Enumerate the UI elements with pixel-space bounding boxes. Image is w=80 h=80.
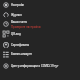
button[interactable]: QR-код (0, 29, 80, 38)
button[interactable]: Ваши счета (0, 19, 80, 29)
staticText: Центр информации о COVID-19 тут (11, 64, 59, 68)
staticText: Журнал (11, 13, 22, 17)
staticText: Проверьте настройки (11, 25, 41, 29)
staticText: Бизнес-аккаунт (11, 52, 32, 56)
staticText: Настройк (11, 3, 24, 7)
button[interactable]: Сертификаты (0, 40, 80, 49)
button[interactable]: Настройк (0, 0, 80, 9)
staticText: Сертификаты (11, 43, 30, 47)
button[interactable]: Бизнес-аккаунт (0, 49, 80, 58)
button[interactable]: Центр информации о COVID-19 тут (0, 61, 80, 70)
staticText: Ваши счета (11, 20, 27, 24)
staticText: QR-код (11, 32, 21, 36)
button[interactable]: Журнал (0, 10, 80, 19)
